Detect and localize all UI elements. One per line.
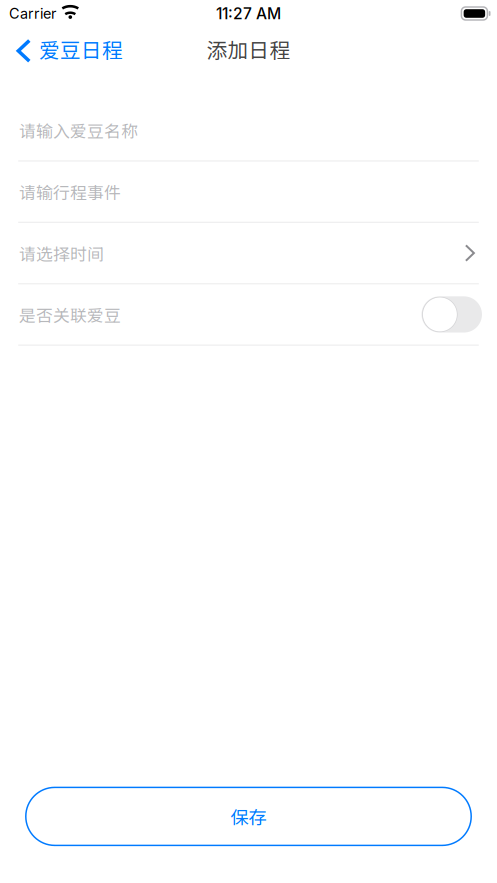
staticText: 添加日程: [206, 34, 290, 64]
staticText: 请输行程事件: [19, 179, 121, 204]
button[interactable]: 请输行程事件: [0, 162, 497, 222]
staticText: 爱豆日程: [39, 34, 123, 64]
staticText: 11:27 AM: [216, 4, 281, 23]
staticText: 请输入爱豆名称: [19, 118, 138, 142]
button[interactable]: 请选择时间: [0, 223, 497, 283]
button[interactable]: 是否关联爱豆: [421, 296, 482, 332]
button[interactable]: 保存: [26, 787, 471, 845]
staticText: 请选择时间: [19, 241, 104, 265]
button[interactable]: 爱豆日程: [0, 27, 133, 71]
staticText: 保存: [230, 803, 266, 830]
staticText: Carrier: [9, 5, 56, 22]
staticText: 是否关联爱豆: [19, 302, 121, 327]
button[interactable]: 请输入爱豆名称: [0, 100, 497, 160]
